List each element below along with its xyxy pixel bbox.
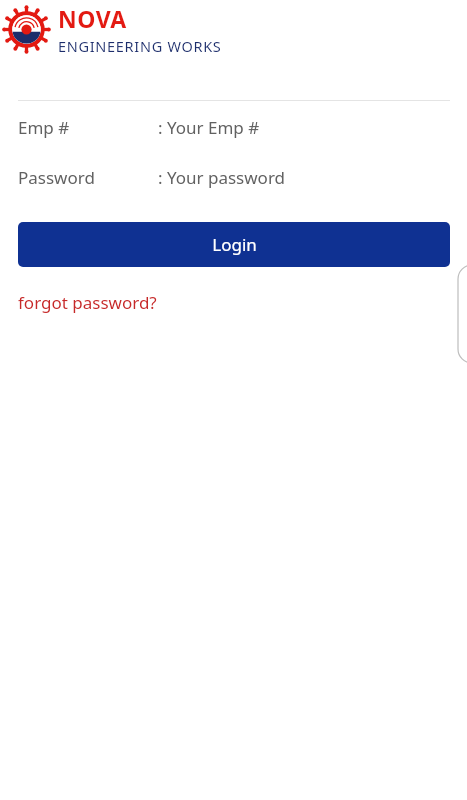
staticText: Emp #	[18, 116, 70, 139]
staticText: NOVA	[58, 3, 127, 34]
button[interactable]: Login	[18, 222, 450, 267]
staticText: ENGINEERING WORKS	[58, 36, 222, 56]
button[interactable]: forgot password?	[14, 289, 161, 316]
button[interactable]: Password	[0, 158, 467, 196]
staticText: forgot password?	[18, 291, 157, 314]
staticText: Login	[212, 233, 257, 256]
button[interactable]: Emp #	[0, 108, 467, 146]
staticText: : Your Emp #	[158, 116, 260, 139]
staticText: : Your password	[158, 166, 286, 189]
other: Nova Engineering Works logo	[3, 6, 50, 53]
staticText: Password	[18, 166, 95, 189]
